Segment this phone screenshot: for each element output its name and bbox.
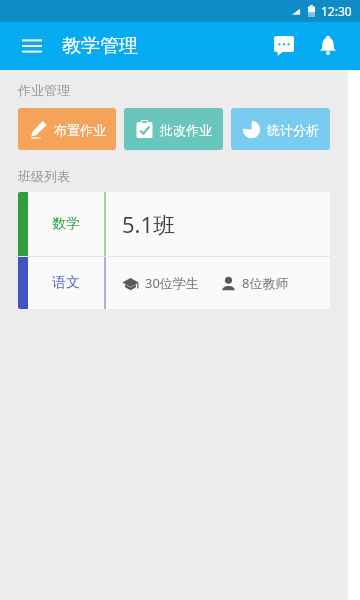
staticText: 5.1班 <box>122 209 176 239</box>
staticText: 统计分析 <box>267 122 319 138</box>
button[interactable]: Messages <box>262 24 306 68</box>
staticText: 作业管理 <box>18 82 70 98</box>
staticText: 语文 <box>52 274 80 292</box>
staticText: 数学 <box>52 215 80 233</box>
staticText: 班级列表 <box>18 168 70 184</box>
button[interactable]: 批改作业 <box>124 108 223 150</box>
staticText: 批改作业 <box>160 122 212 138</box>
staticText: 30位学生 <box>145 274 199 292</box>
staticText: 8位教师 <box>242 274 289 292</box>
button[interactable]: 数学 <box>18 192 330 309</box>
button[interactable]: Menu <box>12 26 52 66</box>
staticText: 12:30 <box>321 3 352 19</box>
button[interactable]: 布置作业 <box>18 108 116 150</box>
staticText: 布置作业 <box>54 122 106 138</box>
button[interactable]: 统计分析 <box>231 108 330 150</box>
staticText: 教学管理 <box>62 34 138 58</box>
button[interactable]: Notifications <box>306 24 350 68</box>
